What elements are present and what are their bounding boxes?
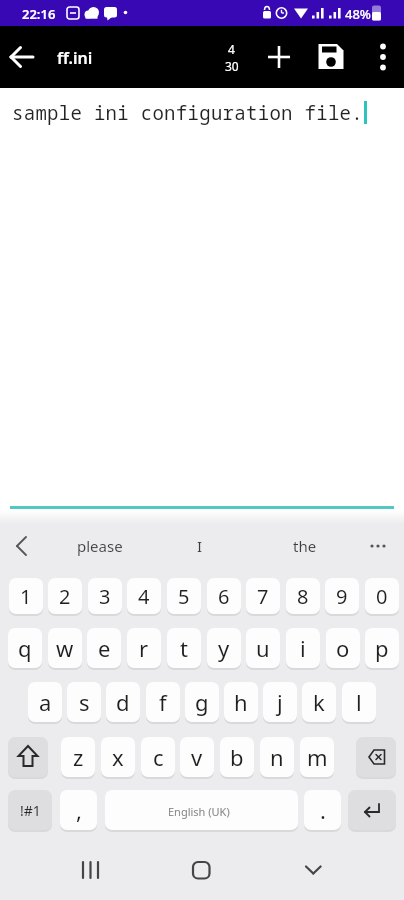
button[interactable]: a	[28, 682, 62, 722]
staticText: 48%	[345, 5, 371, 23]
staticText: o	[336, 633, 350, 663]
button[interactable]: n	[260, 737, 294, 777]
button[interactable]	[70, 855, 114, 891]
staticText: 7	[257, 583, 269, 610]
button[interactable]: z	[61, 737, 95, 777]
button[interactable]: 4	[218, 34, 248, 80]
button[interactable]: x	[101, 737, 135, 777]
staticText: 4	[138, 583, 150, 610]
staticText: 1	[20, 583, 32, 610]
button[interactable]: t	[167, 628, 201, 668]
button[interactable]: .	[304, 790, 341, 830]
staticText: 0	[376, 583, 388, 610]
button[interactable]	[365, 39, 401, 75]
button[interactable]: k	[302, 682, 336, 722]
staticText: l	[356, 687, 362, 717]
staticText: f	[159, 687, 167, 717]
button[interactable]: b	[220, 737, 254, 777]
button[interactable]	[8, 737, 48, 777]
staticText: 9	[336, 583, 348, 610]
button[interactable]: !#1	[8, 790, 52, 830]
button[interactable]: v	[180, 737, 214, 777]
button[interactable]: o	[326, 628, 360, 668]
button[interactable]: u	[246, 628, 280, 668]
staticText: i	[300, 633, 306, 663]
button[interactable]: 3	[88, 578, 122, 614]
button[interactable]: p	[365, 628, 399, 668]
button[interactable]: r	[127, 628, 161, 668]
button[interactable]	[179, 855, 223, 891]
button[interactable]	[356, 737, 396, 777]
staticText: 4	[228, 41, 235, 57]
button[interactable]: d	[106, 682, 140, 722]
button[interactable]: f	[146, 682, 180, 722]
staticText: 8	[297, 583, 309, 610]
button[interactable]: g	[185, 682, 219, 722]
button[interactable]: l	[342, 682, 376, 722]
button[interactable]: 2	[48, 578, 82, 614]
button[interactable]: q	[8, 628, 42, 668]
button[interactable]: m	[300, 737, 334, 777]
button[interactable]: y	[207, 628, 241, 668]
staticText: 6	[218, 583, 230, 610]
button[interactable]	[4, 39, 40, 75]
button[interactable]: the	[289, 530, 321, 562]
staticText: 2	[59, 583, 71, 610]
staticText: 3	[99, 583, 111, 610]
staticText: please	[77, 536, 123, 556]
button[interactable]: e	[87, 628, 121, 668]
button[interactable]	[313, 39, 349, 75]
button[interactable]	[261, 39, 297, 75]
button[interactable]	[8, 532, 36, 560]
button[interactable]: i	[286, 628, 320, 668]
staticText: b	[230, 742, 244, 772]
button[interactable]: 6	[207, 578, 241, 614]
button[interactable]	[362, 532, 394, 560]
button[interactable]: c	[141, 737, 175, 777]
staticText: the	[293, 536, 317, 556]
staticText: c	[153, 742, 164, 772]
staticText: z	[73, 742, 84, 772]
button[interactable]: 7	[246, 578, 280, 614]
button[interactable]: 8	[286, 578, 320, 614]
button[interactable]: 1	[9, 578, 43, 614]
button[interactable]: 9	[325, 578, 359, 614]
staticText: I	[197, 536, 203, 556]
button[interactable]: ,	[60, 790, 97, 830]
staticText: ff.ini	[57, 47, 93, 69]
button[interactable]	[291, 855, 335, 891]
staticText: .	[320, 795, 326, 825]
staticText: sample ini configuration file.	[12, 100, 364, 126]
staticText: English (UK)	[168, 804, 230, 819]
staticText: v	[191, 742, 203, 772]
staticText: g	[195, 687, 209, 717]
button[interactable]	[348, 790, 396, 830]
staticText: e	[98, 633, 111, 663]
staticText: r	[139, 633, 149, 663]
staticText: 5	[178, 583, 190, 610]
staticText: n	[270, 742, 284, 772]
button[interactable]: please	[70, 530, 130, 562]
button[interactable]: 0	[365, 578, 399, 614]
staticText: d	[116, 687, 130, 717]
staticText: x	[112, 742, 124, 772]
staticText: h	[234, 687, 248, 717]
staticText: !#1	[20, 801, 41, 820]
staticText: s	[79, 687, 90, 717]
staticText: t	[180, 633, 188, 663]
button[interactable]: 4	[127, 578, 161, 614]
staticText: 30	[225, 58, 239, 74]
button[interactable]: w	[48, 628, 82, 668]
staticText: 22:16	[22, 5, 56, 23]
staticText: a	[39, 687, 52, 717]
staticText: m	[307, 742, 328, 772]
button[interactable]: j	[263, 682, 297, 722]
button[interactable]: h	[224, 682, 258, 722]
button[interactable]: I	[186, 530, 214, 562]
staticText: p	[375, 633, 389, 663]
button[interactable]	[105, 790, 298, 830]
button[interactable]: 5	[167, 578, 201, 614]
staticText: y	[218, 633, 230, 663]
button[interactable]: s	[67, 682, 101, 722]
staticText: ,	[76, 795, 82, 825]
